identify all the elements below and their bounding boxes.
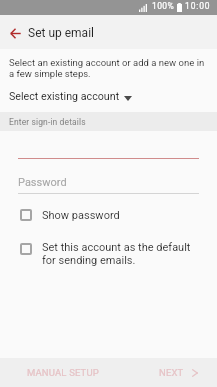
staticText: Select an existing account or add a new …	[9, 57, 208, 80]
staticText: Password	[18, 176, 67, 189]
button[interactable]: Select existing account	[0, 88, 217, 104]
staticText: Set up email	[28, 26, 94, 40]
staticText: NEXT	[159, 367, 184, 378]
staticText: Select existing account	[9, 90, 120, 103]
staticText: Enter sign-in details	[9, 117, 86, 127]
button[interactable]: Set this account as the default for send…	[0, 239, 217, 269]
button[interactable]: Show password	[0, 206, 217, 236]
staticText: Set this account as the default for send…	[42, 241, 191, 267]
staticText: MANUAL SETUP	[27, 367, 99, 378]
staticText: 100%	[152, 1, 174, 11]
button[interactable]: Back	[1, 19, 29, 47]
button[interactable]: NEXT	[145, 360, 211, 385]
staticText: 10:00	[185, 1, 211, 11]
button[interactable]: MANUAL SETUP	[14, 360, 112, 385]
staticText: Show password	[42, 209, 120, 222]
